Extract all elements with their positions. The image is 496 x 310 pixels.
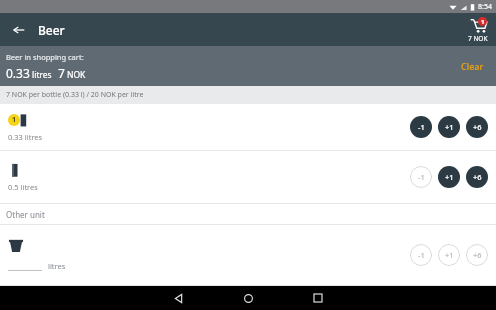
staticText: 1 <box>12 115 17 125</box>
button[interactable]: 0.5 litres <box>0 151 496 203</box>
button[interactable]: +1 <box>438 244 460 266</box>
staticText: Beer in shopping cart: <box>6 52 84 62</box>
button[interactable]: -1 <box>410 166 432 188</box>
other: Back <box>12 23 26 37</box>
button[interactable]: Recents <box>309 289 327 307</box>
staticText: Clear <box>461 60 484 72</box>
staticText: -1 <box>418 122 425 132</box>
staticText: +6 <box>473 250 482 260</box>
button[interactable]: -1 <box>410 244 432 266</box>
staticText: 0.33 <box>6 65 30 81</box>
staticText: NOK <box>67 69 86 81</box>
staticText: 1 <box>481 18 485 26</box>
button[interactable]: Shopping cart, 7 NOK <box>466 17 490 43</box>
staticText: 7 <box>58 65 65 81</box>
button[interactable]: Back <box>169 289 187 307</box>
staticText: 8:54 <box>478 2 492 12</box>
button[interactable]: +6 <box>466 116 488 138</box>
staticText: 7 NOK <box>468 34 488 43</box>
button[interactable]: +1 <box>438 166 460 188</box>
staticText: 0.33 litres <box>8 132 43 142</box>
button[interactable]: Clear <box>453 54 492 78</box>
staticText: Other unit <box>6 209 45 220</box>
button[interactable]: -1 <box>410 116 432 138</box>
button[interactable]: litres <box>0 225 496 285</box>
button[interactable]: +1 <box>438 116 460 138</box>
staticText: +1 <box>445 172 454 182</box>
button[interactable]: 1 <box>0 104 496 150</box>
staticText: 0.5 litres <box>8 182 38 192</box>
staticText: +6 <box>473 122 482 132</box>
staticText: +6 <box>473 172 482 182</box>
staticText: Beer <box>38 22 65 38</box>
staticText: -1 <box>418 250 425 260</box>
button[interactable]: +6 <box>466 166 488 188</box>
button[interactable]: +6 <box>466 244 488 266</box>
button[interactable]: Home <box>239 289 257 307</box>
staticText: +1 <box>445 122 454 132</box>
staticText: 7 NOK per bottle (0.33 l) / 20 NOK per l… <box>6 90 144 100</box>
button[interactable]: Back <box>8 18 69 42</box>
staticText: litres <box>32 69 52 81</box>
staticText: litres <box>48 261 66 271</box>
staticText: +1 <box>445 250 454 260</box>
staticText: -1 <box>418 172 425 182</box>
